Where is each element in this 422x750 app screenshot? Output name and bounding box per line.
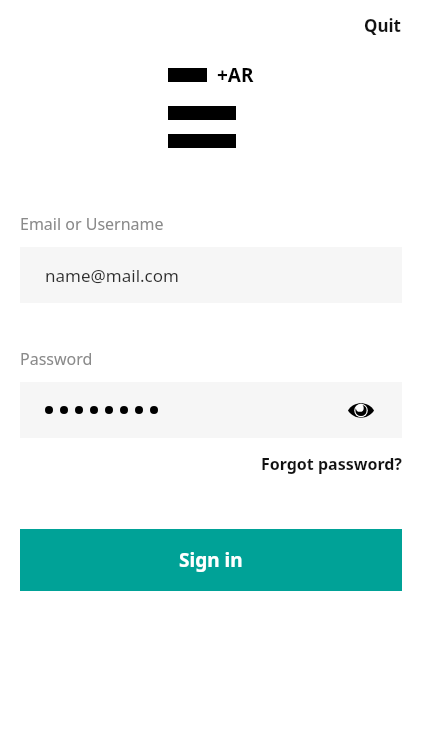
staticText: Password [20,348,93,370]
button[interactable]: Sign in [20,529,402,591]
button[interactable]: Quit [355,8,410,43]
button[interactable]: Show password [346,395,376,425]
staticText: Forgot password? [260,453,402,475]
button[interactable]: Forgot password? [260,450,402,478]
staticText: Sign in [179,547,243,573]
staticText: Email or Username [20,213,164,235]
staticText: name@mail.com [45,264,179,287]
button[interactable]: name@mail.com [20,247,402,303]
staticText: Quit [364,14,401,37]
button[interactable]: Show password [20,382,402,438]
staticText: +AR [217,62,254,88]
